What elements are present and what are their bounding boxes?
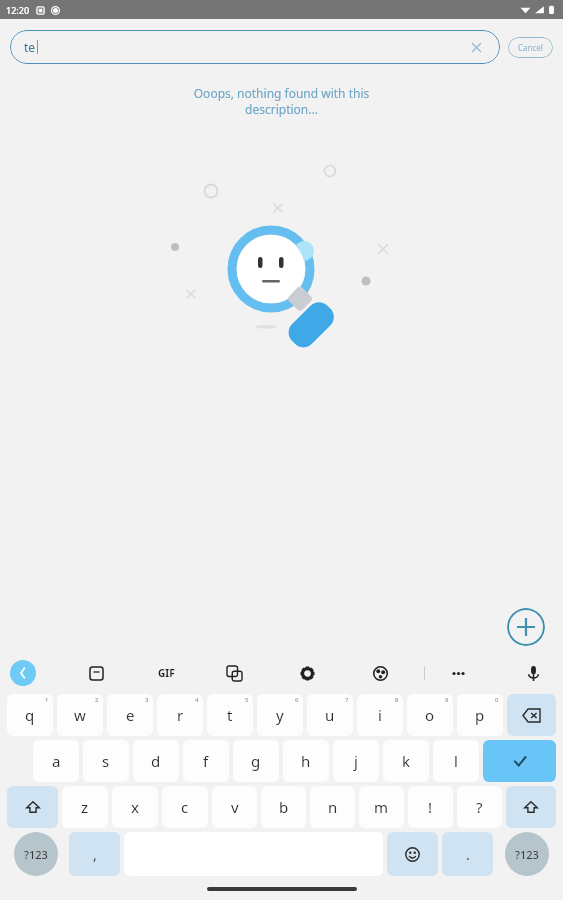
staticText: c [181, 797, 189, 817]
button[interactable]: Emoji [387, 832, 438, 876]
staticText: d [151, 751, 161, 771]
staticText: ?123 [24, 847, 48, 862]
button[interactable]: j [333, 740, 379, 782]
button[interactable]: 5 [207, 694, 253, 736]
staticText: i [378, 705, 382, 725]
button[interactable]: Translate [221, 660, 247, 686]
button[interactable]: h [283, 740, 329, 782]
button[interactable]: GIF [158, 666, 175, 680]
staticText: 9 [445, 696, 449, 704]
button[interactable]: Backspace [507, 694, 556, 736]
staticText: h [301, 751, 311, 771]
button[interactable]: ?123 [14, 832, 58, 876]
staticText: 0 [495, 696, 499, 704]
button[interactable]: 1 [7, 694, 53, 736]
staticText: k [402, 751, 411, 771]
button[interactable]: More [445, 660, 471, 686]
button[interactable]: ? [457, 786, 502, 828]
button[interactable]: n [310, 786, 355, 828]
staticText: 8 [395, 696, 399, 704]
button[interactable]: k [383, 740, 429, 782]
button[interactable]: Sticker [83, 660, 109, 686]
button[interactable]: Enter [483, 740, 556, 782]
staticText: a [52, 751, 61, 771]
button[interactable]: x [112, 786, 158, 828]
button[interactable]: Back [10, 660, 36, 686]
button[interactable]: l [433, 740, 479, 782]
staticText: Ooops, nothing found with this descripti… [0, 85, 563, 117]
button[interactable]: 0 [457, 694, 503, 736]
staticText: s [102, 751, 110, 771]
button[interactable]: Cancel [508, 37, 553, 58]
button[interactable]: 3 [107, 694, 153, 736]
button[interactable]: 6 [257, 694, 303, 736]
staticText: 12:20 [6, 4, 30, 16]
staticText: 1 [45, 696, 49, 704]
staticText: GIF [158, 666, 175, 680]
staticText: 2 [95, 696, 99, 704]
button[interactable]: ?123 [505, 832, 549, 876]
staticText: 5 [245, 696, 249, 704]
staticText: y [276, 705, 284, 725]
button[interactable]: a [33, 740, 79, 782]
staticText: f [203, 751, 209, 771]
button[interactable]: Shift [506, 786, 556, 828]
staticText: z [81, 797, 89, 817]
button[interactable]: te [10, 30, 500, 64]
staticText: j [354, 751, 358, 771]
staticText: e [126, 705, 135, 725]
button[interactable]: Add [507, 608, 545, 646]
staticText: ?123 [515, 847, 539, 862]
button[interactable]: 9 [407, 694, 453, 736]
staticText: m [374, 797, 389, 817]
staticText: r [177, 705, 184, 725]
button[interactable]: ! [408, 786, 453, 828]
staticText: 7 [345, 696, 349, 704]
staticText: n [328, 797, 338, 817]
button[interactable]: Settings [294, 660, 320, 686]
staticText: Cancel [518, 42, 543, 53]
button[interactable]: v [212, 786, 257, 828]
button[interactable]: Voice input [520, 660, 546, 686]
button[interactable]: c [162, 786, 208, 828]
staticText: 6 [295, 696, 299, 704]
staticText: . [466, 845, 470, 864]
staticText: 3 [145, 696, 149, 704]
staticText: v [231, 797, 239, 817]
staticText: q [25, 705, 35, 725]
staticText: u [325, 705, 335, 725]
staticText: te [24, 39, 36, 55]
button[interactable]: b [261, 786, 306, 828]
button[interactable]: Clear [466, 37, 486, 57]
staticText: ! [428, 797, 433, 817]
button[interactable]: 2 [57, 694, 103, 736]
button[interactable]: m [359, 786, 404, 828]
staticText: p [475, 705, 485, 725]
button[interactable]: s [83, 740, 129, 782]
staticText: x [131, 797, 139, 817]
button[interactable]: Period [442, 832, 493, 876]
button[interactable]: d [133, 740, 179, 782]
staticText: l [454, 751, 458, 771]
staticText: b [279, 797, 289, 817]
button[interactable]: Shift [7, 786, 58, 828]
button[interactable]: Comma [69, 832, 120, 876]
staticText: , [93, 845, 97, 864]
staticText: 4 [195, 696, 199, 704]
button[interactable]: 7 [307, 694, 353, 736]
staticText: w [74, 705, 86, 725]
button[interactable]: g [233, 740, 279, 782]
staticText: o [425, 705, 435, 725]
button[interactable]: z [62, 786, 108, 828]
button[interactable]: Theme [367, 660, 393, 686]
staticText: ? [476, 797, 483, 817]
staticText: g [251, 751, 261, 771]
button[interactable]: f [183, 740, 229, 782]
button[interactable]: 8 [357, 694, 403, 736]
staticText: t [227, 705, 233, 725]
button[interactable]: 4 [157, 694, 203, 736]
